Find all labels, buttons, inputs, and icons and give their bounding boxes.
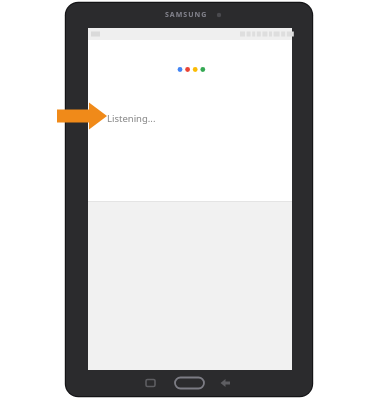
- button[interactable]: Back: [217, 375, 233, 390]
- button[interactable]: Listening, tap to stop: [88, 40, 292, 202]
- staticText: SAMSUNG: [165, 10, 208, 20]
- button[interactable]: Home: [173, 374, 206, 390]
- button[interactable]: Recent apps: [144, 375, 159, 390]
- staticText: Listening...: [107, 112, 156, 125]
